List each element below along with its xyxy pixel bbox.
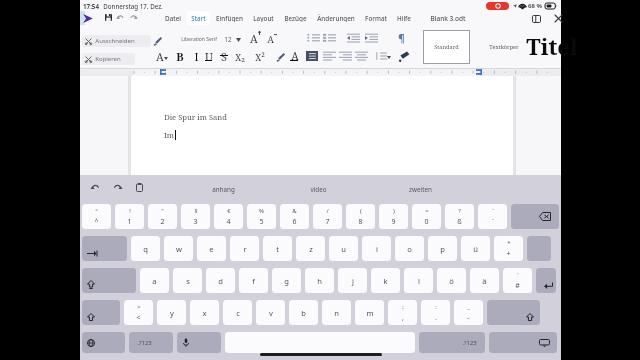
button[interactable]: s	[173, 268, 202, 293]
button[interactable]: g	[272, 268, 301, 293]
button[interactable]: *	[494, 236, 523, 261]
button[interactable]: n	[322, 300, 351, 325]
button[interactable]: Redo	[128, 12, 139, 23]
button[interactable]: Redo	[110, 180, 124, 194]
button[interactable]: Line spacing	[375, 51, 387, 61]
button[interactable]: Enter	[536, 268, 556, 293]
button[interactable]: Increase indent	[365, 33, 378, 43]
button[interactable]: q	[131, 236, 160, 261]
button[interactable]: Tab	[82, 236, 127, 261]
button[interactable]: anhang	[210, 183, 237, 196]
button[interactable]: List	[323, 33, 336, 43]
button[interactable]: Layout	[249, 11, 278, 25]
button[interactable]: e	[197, 236, 226, 261]
button[interactable]: App menu	[81, 12, 94, 24]
button[interactable]: r	[230, 236, 259, 261]
button[interactable]: :	[421, 300, 450, 325]
button[interactable]: '	[503, 268, 532, 293]
button[interactable]: Standard	[423, 30, 470, 64]
button[interactable]: Ausschneiden	[82, 35, 151, 47]
button[interactable]: d	[206, 268, 235, 293]
button[interactable]: °	[82, 204, 111, 229]
button[interactable]: /	[313, 204, 342, 229]
button[interactable]: c	[223, 300, 252, 325]
button[interactable]: Borders	[306, 51, 318, 61]
button[interactable]: Key	[527, 236, 551, 261]
button[interactable]: !	[115, 204, 144, 229]
button[interactable]: Textkörper	[478, 30, 530, 64]
button[interactable]: ;	[388, 300, 417, 325]
button[interactable]: Dictation	[177, 332, 221, 353]
button[interactable]: Undo	[115, 12, 126, 23]
button[interactable]: Shift	[82, 300, 120, 325]
button[interactable]: f	[239, 268, 268, 293]
button[interactable]: l	[404, 268, 433, 293]
button[interactable]: Decrease indent	[347, 33, 360, 43]
button[interactable]: Bezüge	[280, 11, 311, 25]
button[interactable]: ä	[470, 268, 499, 293]
button[interactable]: Undo	[88, 180, 102, 194]
button[interactable]: w	[164, 236, 193, 261]
button[interactable]: Save	[103, 12, 114, 23]
button[interactable]: )	[379, 204, 408, 229]
button[interactable]: Highlight	[275, 51, 286, 62]
button[interactable]: t	[263, 236, 292, 261]
button[interactable]: ?	[445, 204, 474, 229]
button[interactable]: z	[296, 236, 325, 261]
button[interactable]: %	[247, 204, 276, 229]
button[interactable]: k	[371, 268, 400, 293]
button[interactable]: _	[454, 300, 483, 325]
button[interactable]: Datei	[161, 11, 185, 25]
button[interactable]: (	[346, 204, 375, 229]
button[interactable]: .?123	[129, 332, 173, 353]
button[interactable]: €	[214, 204, 243, 229]
button[interactable]: x	[190, 300, 219, 325]
button[interactable]: =	[412, 204, 441, 229]
button[interactable]: `	[478, 204, 507, 229]
button[interactable]: Align	[339, 51, 352, 61]
button[interactable]: Emoji	[82, 332, 125, 353]
button[interactable]: ü	[461, 236, 490, 261]
button[interactable]: Clone formatting	[152, 35, 164, 47]
button[interactable]: Änderungen	[313, 11, 359, 25]
button[interactable]: Formatting marks	[396, 31, 407, 44]
button[interactable]: m	[355, 300, 384, 325]
button[interactable]: y	[157, 300, 186, 325]
button[interactable]: Start	[187, 11, 210, 25]
button[interactable]: Decrease font size	[265, 31, 279, 47]
button[interactable]: List	[307, 33, 320, 43]
button[interactable]: p	[428, 236, 457, 261]
button[interactable]: Paste	[132, 180, 146, 194]
button[interactable]: Paragraph color	[398, 50, 410, 62]
button[interactable]: i	[362, 236, 391, 261]
button[interactable]: video	[308, 183, 329, 196]
button[interactable]: Backspace	[511, 204, 559, 229]
button[interactable]: Caps lock	[82, 268, 136, 293]
button[interactable]: Shift	[487, 300, 540, 325]
button[interactable]: Align	[355, 51, 368, 61]
button[interactable]: v	[256, 300, 285, 325]
button[interactable]: Kopieren	[82, 53, 135, 65]
button[interactable]: "	[148, 204, 177, 229]
button[interactable]: u	[329, 236, 358, 261]
button[interactable]: zweiten	[407, 183, 434, 196]
button[interactable]: §	[181, 204, 210, 229]
button[interactable]: Format	[361, 11, 391, 25]
button[interactable]: Sidebar	[530, 12, 543, 25]
button[interactable]: a	[140, 268, 169, 293]
button[interactable]: o	[395, 236, 424, 261]
button[interactable]: Align	[323, 51, 336, 61]
button[interactable]: .?123	[419, 332, 485, 353]
button[interactable]: ö	[437, 268, 466, 293]
button[interactable]: &	[280, 204, 309, 229]
button[interactable]: Einfügen	[212, 11, 247, 25]
button[interactable]: Close	[552, 12, 565, 25]
button[interactable]: >	[124, 300, 153, 325]
button[interactable]: Increase font size	[248, 30, 262, 46]
button[interactable]: Hilfe	[393, 11, 415, 25]
button[interactable]: Hide keyboard	[489, 332, 557, 353]
button[interactable]: j	[338, 268, 367, 293]
button[interactable]: b	[289, 300, 318, 325]
button[interactable]: h	[305, 268, 334, 293]
